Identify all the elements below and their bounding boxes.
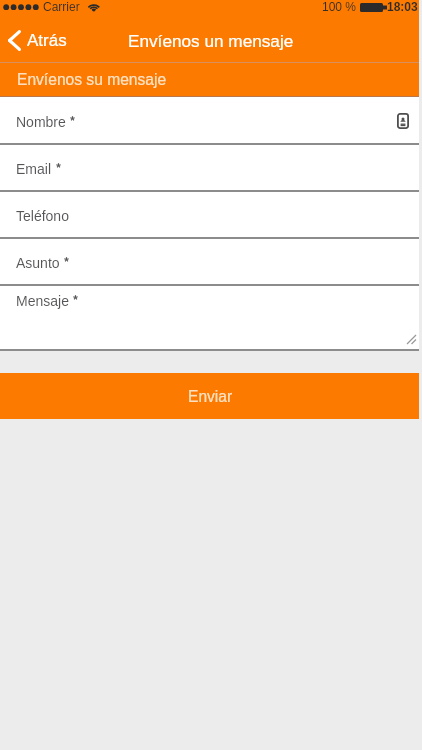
button[interactable]: Asunto [0,239,419,284]
staticText: Email [16,161,52,177]
staticText: Atrás [27,31,67,50]
staticText: Asunto [16,255,60,271]
button[interactable]: Teléfono [0,192,419,237]
button[interactable]: Seleccionar contacto [390,108,416,134]
button[interactable]: Atrás [0,24,75,57]
staticText: 100 % [322,0,357,13]
staticText: Envíenos un mensaje [128,31,294,50]
button[interactable]: Enviar [0,373,419,419]
button[interactable]: Mensaje [0,286,419,349]
staticText: Teléfono [16,208,69,224]
staticText: Nombre [16,114,66,130]
staticText: Carrier [43,0,80,13]
staticText: Enviar [188,388,233,405]
button[interactable]: Nombre [0,97,419,143]
staticText: 18:03 [387,0,418,13]
button[interactable]: Email [0,145,419,190]
staticText: Envíenos su mensaje [17,71,167,88]
staticText: Mensaje [16,293,69,309]
